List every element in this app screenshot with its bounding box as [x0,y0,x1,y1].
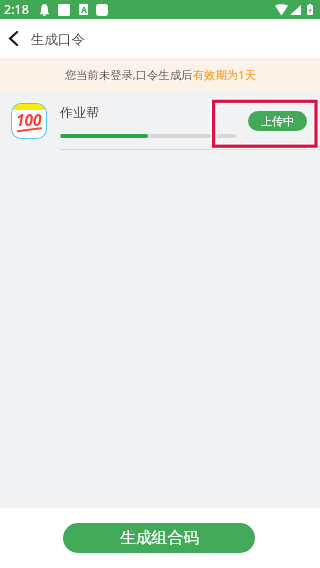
button[interactable]: 上传中 [248,111,307,131]
staticText: 100 [16,109,42,130]
staticText: 有效期为1天 [193,67,256,82]
staticText: 您当前未登录,口令生成后 [65,67,193,82]
staticText: 生成组合码 [120,528,199,548]
button[interactable]: 生成组合码 [63,523,255,553]
button[interactable]: 100 [0,91,320,150]
staticText: 生成口令 [31,31,85,48]
staticText: 2:18 [4,1,29,18]
staticText: A [81,4,87,15]
button[interactable]: Back [0,19,26,58]
staticText: 作业帮 [60,104,99,120]
staticText: 上传中 [261,114,294,128]
